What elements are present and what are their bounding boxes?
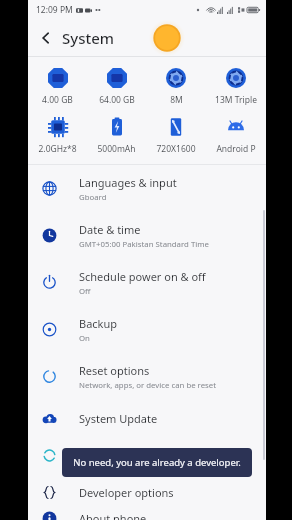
staticText: GMT+05:00 Pakistan Standard Time (79, 239, 209, 250)
staticText: Gboard (79, 192, 107, 203)
button[interactable]: 5000mAh (87, 117, 146, 155)
button[interactable]: 64.00 GB (87, 68, 146, 106)
staticText: System Update (79, 411, 158, 426)
staticText: 12:09 PM (36, 4, 73, 16)
button[interactable]: About phone (28, 511, 266, 520)
button[interactable]: 8M (146, 68, 206, 106)
button[interactable]: Backup (28, 306, 266, 353)
staticText: 13M Triple (215, 94, 257, 106)
staticText: Reset options (79, 363, 150, 378)
staticText: No need, you are already a developer. (73, 456, 241, 469)
button[interactable]: Date & time (28, 212, 266, 259)
staticText: About phone (79, 511, 147, 520)
button[interactable]: 720X1600 (146, 117, 206, 155)
staticText: Date & time (79, 222, 141, 237)
button[interactable]: Schedule power on & off (28, 259, 266, 306)
button[interactable]: Backup and restore (28, 437, 266, 474)
button[interactable]: Developer options (28, 474, 266, 511)
button[interactable]: Android P (206, 117, 266, 155)
staticText: 64.00 GB (99, 94, 135, 106)
staticText: 8M (170, 94, 183, 106)
staticText: 5000mAh (97, 143, 136, 155)
staticText: On (79, 333, 90, 344)
staticText: Developer options (79, 485, 174, 500)
button[interactable]: 4.00 GB (28, 68, 87, 106)
button[interactable]: System Update (28, 400, 266, 437)
staticText: 2.0GHz*8 (38, 143, 77, 155)
button[interactable]: 13M Triple (206, 68, 266, 106)
staticText: Backup (79, 316, 118, 331)
staticText: Schedule power on & off (79, 269, 206, 284)
staticText: System (62, 28, 115, 48)
staticText: Android P (216, 143, 256, 155)
staticText: 4.00 GB (42, 94, 73, 106)
button[interactable]: Reset options (28, 353, 266, 400)
button[interactable]: Languages & input (28, 165, 266, 212)
staticText: Backup and restore (79, 448, 180, 463)
button[interactable]: 2.0GHz*8 (28, 117, 87, 155)
staticText: Languages & input (79, 175, 177, 190)
staticText: Network, apps, or device can be reset (79, 380, 217, 391)
staticText: 720X1600 (156, 143, 196, 155)
staticText: Off (79, 286, 91, 297)
button[interactable]: Back (33, 25, 59, 51)
